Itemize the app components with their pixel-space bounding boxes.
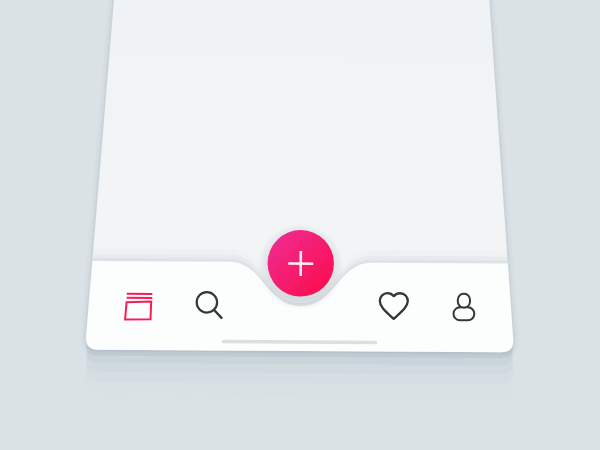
button[interactable]: [445, 287, 483, 325]
button[interactable]: [375, 287, 413, 325]
button[interactable]: [120, 289, 158, 327]
button[interactable]: [267, 230, 334, 297]
button[interactable]: [189, 285, 227, 323]
